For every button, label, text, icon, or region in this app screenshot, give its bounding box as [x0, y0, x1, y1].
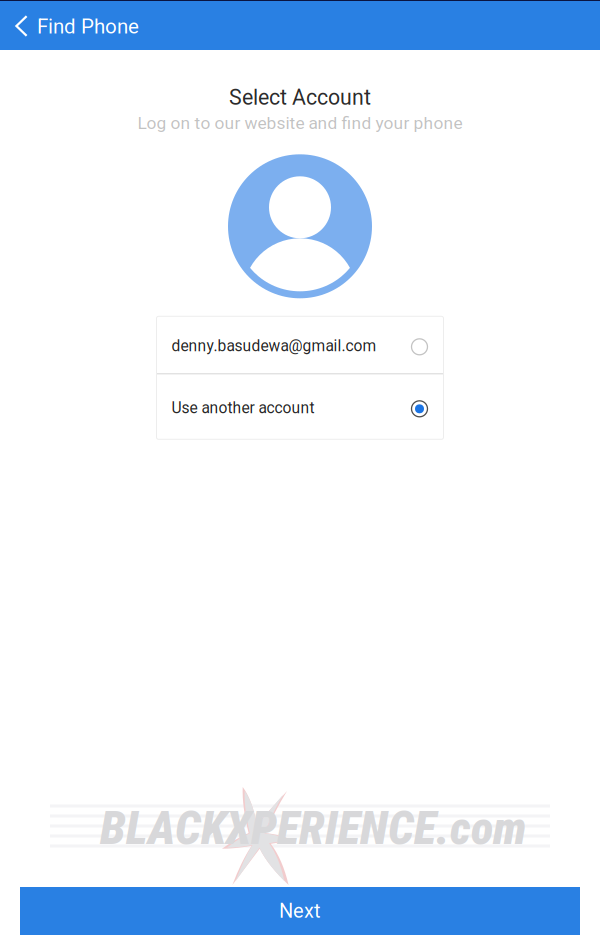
staticText: Next	[279, 899, 321, 923]
staticText: BLACKXPERIENCE.com	[100, 801, 526, 855]
staticText: Find Phone	[37, 14, 139, 39]
button[interactable]: Find Phone	[0, 0, 151, 50]
button[interactable]: denny.basudewa@gmail.com	[156, 316, 443, 373]
staticText: Use another account	[171, 399, 314, 417]
button[interactable]: Use another account	[156, 374, 443, 439]
button[interactable]: Next	[20, 887, 580, 935]
staticText: denny.basudewa@gmail.com	[171, 337, 376, 355]
staticText: Select Account	[229, 85, 371, 110]
staticText: Log on to our website and find your phon…	[137, 113, 462, 133]
